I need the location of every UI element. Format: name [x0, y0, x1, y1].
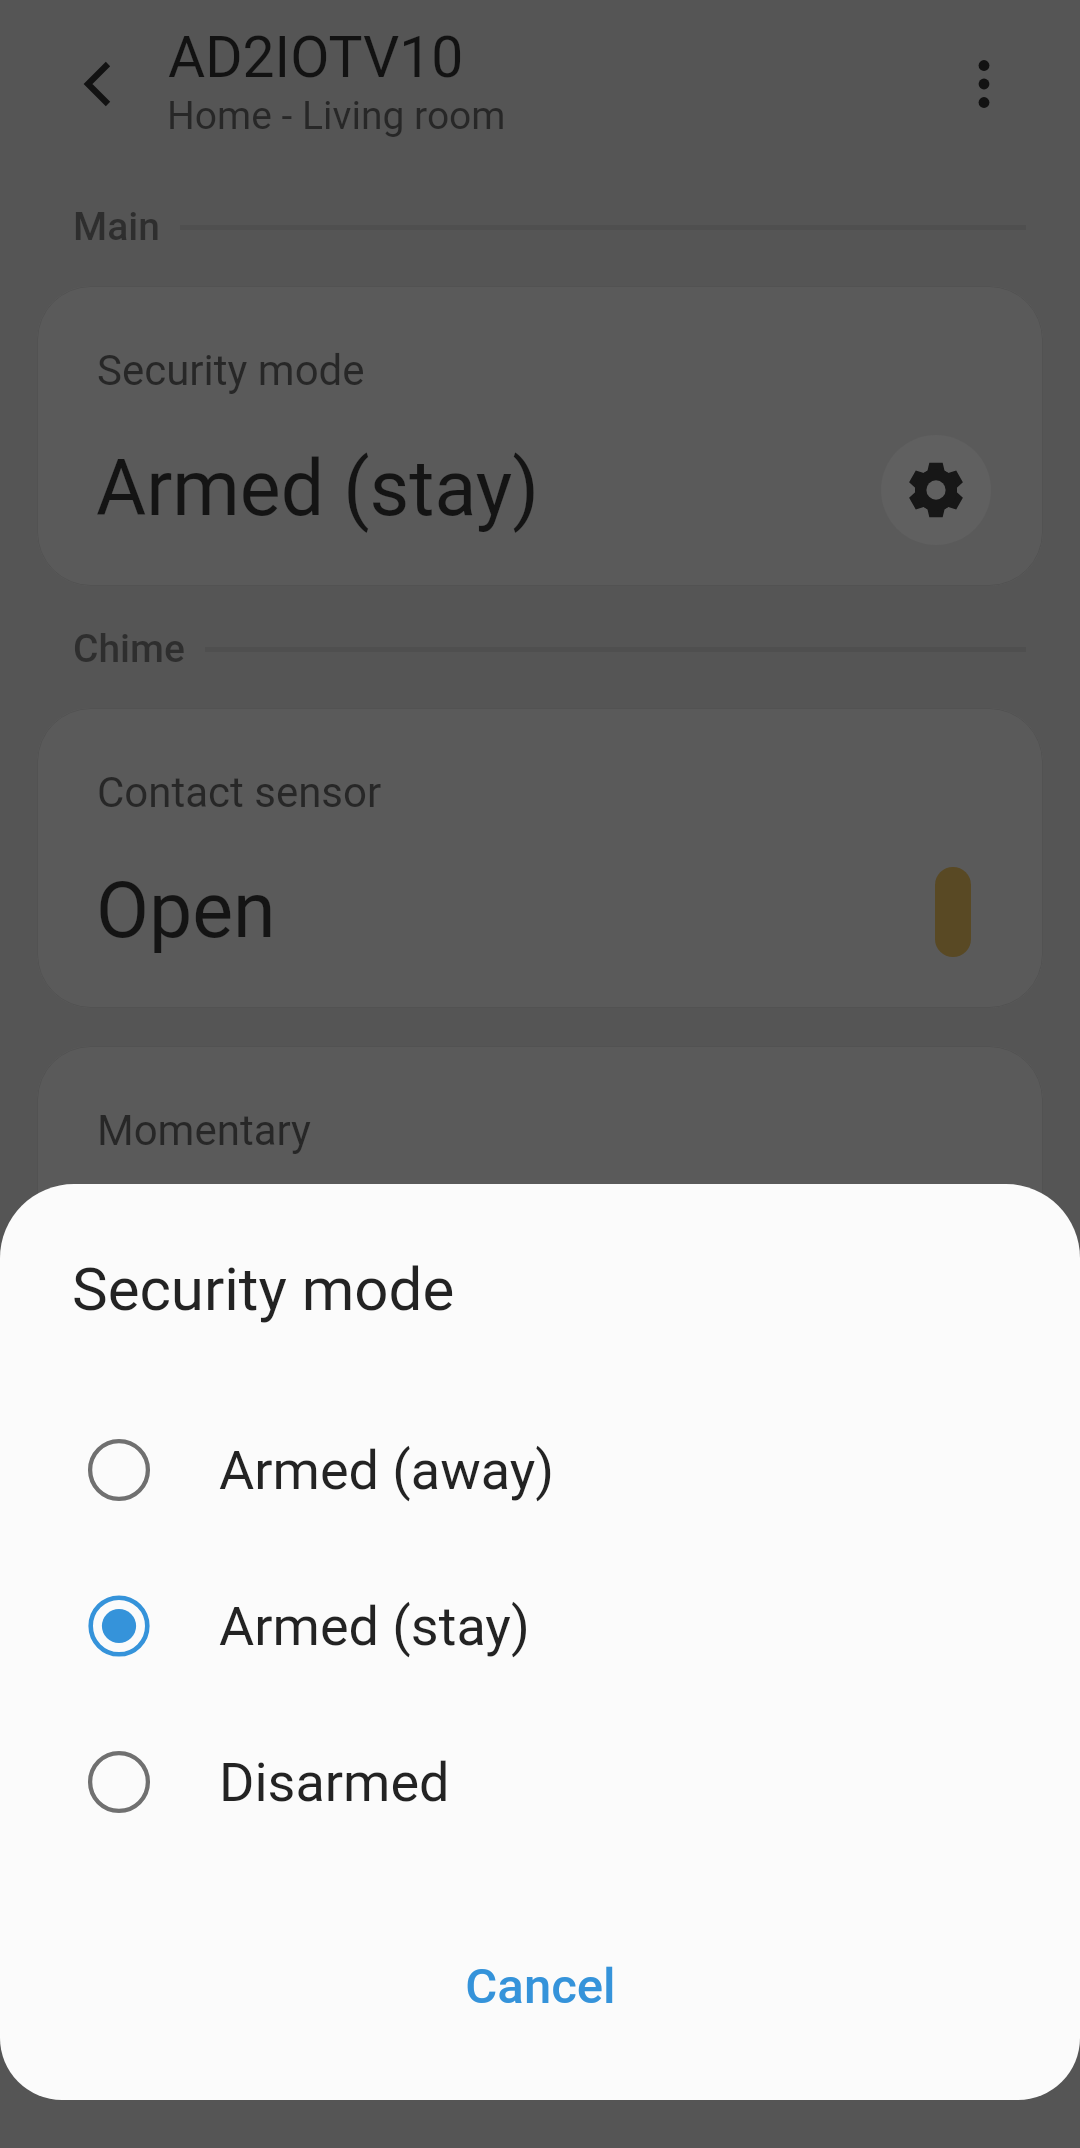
button[interactable]: Disarmed: [0, 1704, 1080, 1860]
button[interactable]: Armed (away): [0, 1392, 1080, 1548]
staticText: Home - Living room: [167, 93, 506, 139]
staticText: Chime: [73, 626, 185, 672]
button[interactable]: Settings: [881, 435, 991, 545]
button[interactable]: Cancel: [390, 1931, 690, 2041]
staticText: AD2IOTV10: [168, 24, 464, 91]
staticText: Momentary: [97, 1106, 311, 1155]
staticText: Armed (stay): [96, 444, 540, 534]
staticText: Armed (stay): [219, 1595, 530, 1658]
staticText: Disarmed: [219, 1751, 450, 1814]
staticText: Main: [73, 204, 160, 250]
button[interactable]: More options: [944, 44, 1024, 124]
staticText: Contact sensor: [97, 768, 382, 817]
staticText: Security mode: [97, 346, 365, 395]
button[interactable]: Armed (stay): [0, 1548, 1080, 1704]
staticText: Armed (away): [219, 1439, 555, 1502]
button[interactable]: Contact sensor: [37, 708, 1043, 1008]
staticText: Security mode: [72, 1254, 455, 1324]
staticText: Open: [96, 866, 276, 956]
button[interactable]: Security mode: [37, 286, 1043, 586]
button[interactable]: Back: [58, 44, 138, 124]
staticText: Cancel: [465, 1958, 616, 2015]
button[interactable]: Momentary: [37, 1046, 1043, 1346]
